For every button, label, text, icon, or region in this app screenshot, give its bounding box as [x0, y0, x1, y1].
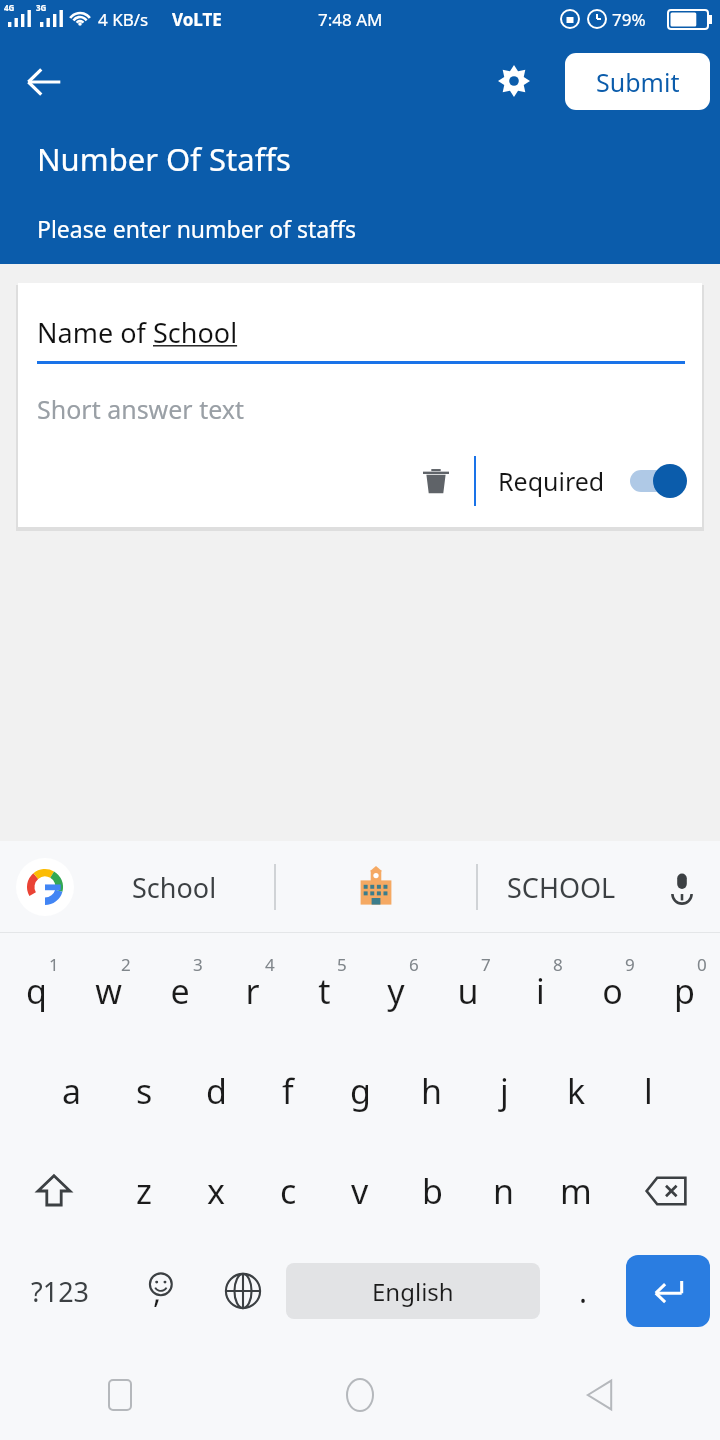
- staticText: w: [95, 968, 122, 1014]
- staticText: 1: [49, 953, 59, 976]
- button[interactable]: l: [612, 1041, 684, 1141]
- staticText: o: [602, 968, 623, 1014]
- staticText: f: [282, 1068, 294, 1114]
- button[interactable]: Change language: [200, 1241, 286, 1341]
- staticText: Required: [498, 464, 605, 498]
- button[interactable]: r: [216, 941, 288, 1041]
- button[interactable]: School emoji: [276, 841, 476, 933]
- staticText: 5: [337, 953, 347, 976]
- staticText: Short answer text: [37, 392, 245, 426]
- staticText: 2: [121, 953, 131, 976]
- button[interactable]: Submit: [565, 53, 710, 110]
- staticText: 7:48 AM: [318, 8, 383, 31]
- button[interactable]: Name of: [18, 283, 702, 527]
- staticText: 6: [409, 953, 419, 976]
- button[interactable]: y: [360, 941, 432, 1041]
- staticText: 4G: [4, 2, 15, 13]
- staticText: q: [26, 968, 47, 1014]
- button[interactable]: ?123: [0, 1241, 120, 1341]
- staticText: School: [153, 314, 238, 351]
- button[interactable]: t: [288, 941, 360, 1041]
- button[interactable]: Shift: [0, 1141, 108, 1241]
- staticText: 4: [265, 953, 275, 976]
- button[interactable]: .: [540, 1241, 626, 1341]
- staticText: 4 KB/s: [98, 8, 149, 31]
- staticText: e: [170, 968, 190, 1014]
- button[interactable]: g: [324, 1041, 396, 1141]
- staticText: u: [457, 968, 479, 1014]
- button[interactable]: o: [576, 941, 648, 1041]
- button[interactable]: n: [468, 1141, 540, 1241]
- staticText: Submit: [596, 65, 680, 99]
- button[interactable]: Voice input: [644, 841, 720, 933]
- staticText: Please enter number of staffs: [37, 213, 357, 244]
- button[interactable]: Google: [16, 858, 74, 916]
- button[interactable]: Settings: [486, 53, 542, 109]
- staticText: Name of: [37, 314, 153, 351]
- staticText: 8: [553, 953, 563, 976]
- staticText: .: [579, 1271, 588, 1312]
- button[interactable]: Backspace: [612, 1141, 720, 1241]
- button[interactable]: Back: [16, 54, 72, 110]
- button[interactable]: x: [180, 1141, 252, 1241]
- staticText: b: [422, 1168, 443, 1214]
- staticText: c: [280, 1168, 297, 1214]
- staticText: 0: [697, 953, 707, 976]
- button[interactable]: k: [540, 1041, 612, 1141]
- button[interactable]: e: [144, 941, 216, 1041]
- staticText: a: [62, 1068, 82, 1114]
- button[interactable]: p: [648, 941, 720, 1041]
- button[interactable]: Back: [480, 1350, 720, 1440]
- button[interactable]: h: [396, 1041, 468, 1141]
- staticText: x: [207, 1168, 225, 1214]
- button[interactable]: m: [540, 1141, 612, 1241]
- staticText: s: [136, 1068, 153, 1114]
- staticText: l: [644, 1068, 653, 1114]
- button[interactable]: f: [252, 1041, 324, 1141]
- staticText: m: [560, 1168, 592, 1214]
- staticText: j: [500, 1068, 509, 1114]
- staticText: ?123: [31, 1273, 90, 1310]
- staticText: VoLTE: [172, 8, 222, 31]
- staticText: t: [318, 968, 331, 1014]
- staticText: 7: [481, 953, 491, 976]
- button[interactable]: Recents: [0, 1350, 240, 1440]
- staticText: 3: [193, 953, 203, 976]
- staticText: i: [536, 968, 545, 1014]
- staticText: p: [674, 968, 695, 1014]
- button[interactable]: a: [36, 1041, 108, 1141]
- button[interactable]: Delete: [410, 455, 462, 507]
- button[interactable]: Home: [240, 1350, 480, 1440]
- staticText: 3G: [36, 2, 47, 13]
- staticText: z: [136, 1168, 152, 1214]
- staticText: r: [245, 968, 260, 1014]
- button[interactable]: z: [108, 1141, 180, 1241]
- button[interactable]: v: [324, 1141, 396, 1241]
- button[interactable]: d: [180, 1041, 252, 1141]
- staticText: SCHOOL: [507, 869, 616, 906]
- staticText: 9: [625, 953, 635, 976]
- staticText: ,: [153, 1271, 162, 1312]
- staticText: d: [206, 1068, 227, 1114]
- button[interactable]: j: [468, 1041, 540, 1141]
- staticText: English: [372, 1275, 454, 1308]
- button[interactable]: q: [0, 941, 72, 1041]
- button[interactable]: School: [74, 841, 274, 933]
- button[interactable]: i: [504, 941, 576, 1041]
- button[interactable]: Emoji: [120, 1241, 200, 1341]
- button[interactable]: Required: [498, 459, 689, 503]
- button[interactable]: c: [252, 1141, 324, 1241]
- button[interactable]: u: [432, 941, 504, 1041]
- button[interactable]: SCHOOL: [478, 841, 644, 933]
- staticText: g: [350, 1068, 371, 1114]
- staticText: h: [421, 1068, 443, 1114]
- button[interactable]: English: [286, 1263, 540, 1319]
- staticText: School: [132, 869, 217, 906]
- button[interactable]: Enter: [626, 1255, 710, 1327]
- staticText: 79%: [612, 8, 646, 31]
- staticText: Number Of Staffs: [37, 138, 291, 180]
- button[interactable]: w: [72, 941, 144, 1041]
- staticText: y: [387, 968, 405, 1014]
- button[interactable]: s: [108, 1041, 180, 1141]
- button[interactable]: b: [396, 1141, 468, 1241]
